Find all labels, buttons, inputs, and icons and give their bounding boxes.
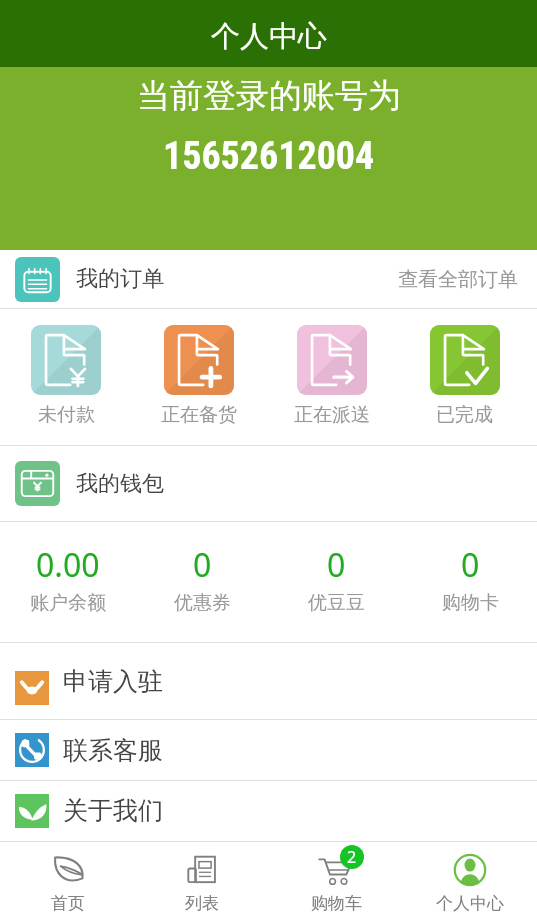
staticText: 列表 — [185, 893, 219, 914]
button[interactable]: 首页 — [0, 842, 135, 920]
staticText: 0.00 — [36, 543, 100, 587]
staticText: 0 — [193, 543, 212, 587]
staticText: 购物车 — [311, 893, 362, 914]
staticText: 个人中心 — [436, 893, 504, 914]
staticText: 正在派送 — [294, 403, 370, 427]
staticText: 正在备货 — [161, 403, 237, 427]
button[interactable]: 列表 — [135, 842, 269, 920]
button[interactable]: 申请入驻 — [0, 643, 537, 719]
button[interactable]: 我的钱包 — [0, 446, 537, 521]
staticText: 关于我们 — [63, 795, 163, 826]
button[interactable]: 正在备货 — [132, 309, 265, 445]
staticText: 2 — [347, 846, 357, 868]
staticText: 0 — [461, 543, 480, 587]
staticText: 优豆豆 — [308, 591, 365, 615]
button[interactable]: 正在派送 — [265, 309, 398, 445]
staticText: 账户余额 — [30, 591, 106, 615]
staticText: 个人中心 — [211, 18, 327, 55]
staticText: 已完成 — [436, 403, 493, 427]
staticText: 当前登录的账号为 — [137, 75, 401, 117]
button[interactable]: 个人中心 — [403, 842, 537, 920]
button[interactable]: 0 — [135, 522, 269, 642]
button[interactable]: 已完成 — [398, 309, 531, 445]
staticText: 优惠券 — [174, 591, 231, 615]
staticText: 首页 — [51, 893, 85, 914]
button[interactable]: 我的订单 — [0, 250, 537, 308]
button[interactable]: 0.00 — [0, 522, 135, 642]
button[interactable]: 关于我们 — [0, 781, 537, 840]
staticText: 查看全部订单 — [398, 267, 518, 292]
button[interactable]: 购物车 — [269, 842, 403, 920]
button[interactable]: 0 — [403, 522, 537, 642]
button[interactable]: 0 — [269, 522, 403, 642]
staticText: 购物卡 — [442, 591, 499, 615]
button[interactable]: 联系客服 — [0, 720, 537, 780]
staticText: 我的订单 — [76, 265, 164, 293]
staticText: 0 — [327, 543, 346, 587]
staticText: 申请入驻 — [63, 666, 163, 697]
staticText: 联系客服 — [63, 735, 163, 766]
staticText: 我的钱包 — [76, 470, 164, 498]
staticText: 15652612004 — [163, 134, 375, 179]
button[interactable]: 未付款 — [0, 309, 132, 445]
staticText: 未付款 — [38, 403, 95, 427]
